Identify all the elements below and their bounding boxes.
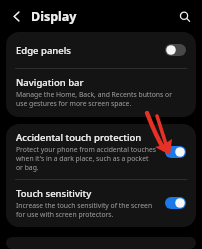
button[interactable]: Accidental touch protection [162,143,189,161]
staticText: Accidental touch protection [16,131,142,144]
staticText: Display [31,8,77,25]
staticText: Manage the Home, Back, and Recents butto… [16,90,184,108]
button[interactable]: Navigation bar [6,69,196,117]
button[interactable]: Edge panels [162,41,189,59]
staticText: Increase the touch sensitivity of the sc… [16,201,157,219]
button[interactable]: Accidental touch protection [6,124,196,180]
staticText: Edge panels [16,44,71,57]
staticText: Touch sensitivity [16,187,92,200]
button[interactable]: Touch sensitivity [162,194,189,212]
button[interactable]: Touch sensitivity [6,180,196,227]
staticText: Protect your phone from accidental touch… [16,145,157,172]
button[interactable]: Search [174,6,195,27]
staticText: Navigation bar [16,76,84,89]
button[interactable]: Edge panels [6,32,196,69]
button[interactable]: Back [6,6,26,26]
